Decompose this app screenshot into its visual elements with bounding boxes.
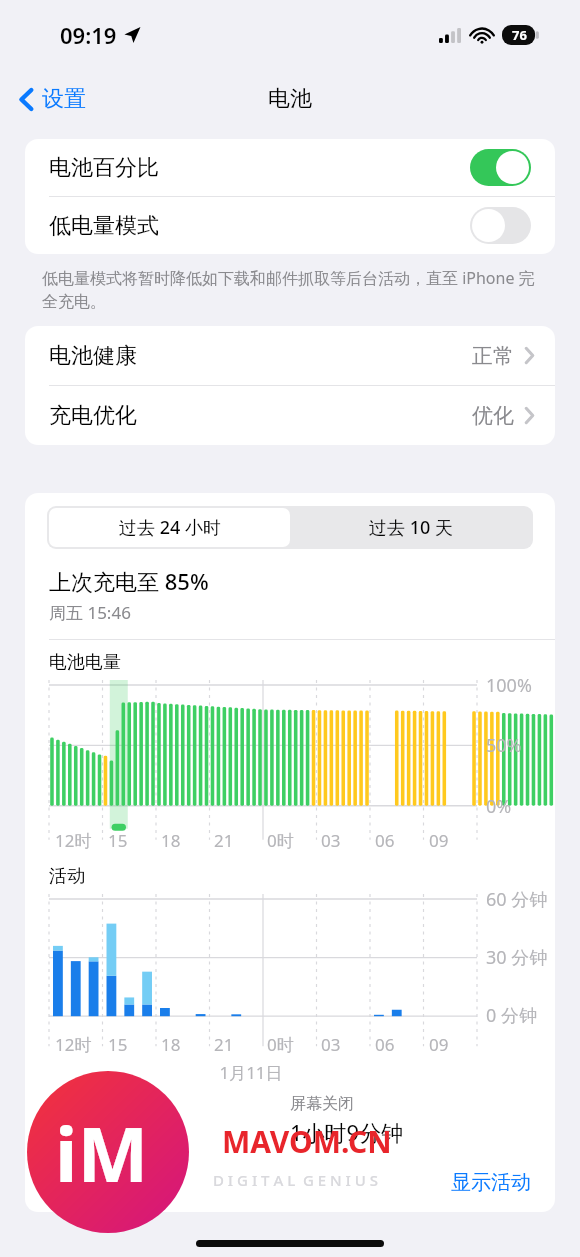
staticText: 1小时9分钟 xyxy=(290,1117,404,1147)
staticText: 30 分钟 xyxy=(486,945,548,970)
staticText: 低电量模式将暂时降低如下载和邮件抓取等后台活动，直至 iPhone 完全充电。 xyxy=(42,267,544,312)
staticText: 充电优化 xyxy=(49,402,137,430)
staticText: 正常 xyxy=(472,343,514,369)
staticText: 过去 10 天 xyxy=(369,515,453,540)
staticText: 过去 24 小时 xyxy=(119,515,221,540)
staticText: 09 xyxy=(429,829,449,852)
staticText: 0时 xyxy=(267,829,294,852)
staticText: 12时 xyxy=(55,1033,92,1056)
staticText: 18 xyxy=(161,829,181,852)
staticText: MAVOM.CN xyxy=(222,1121,392,1162)
staticText: 屏幕关闭 xyxy=(290,1094,354,1114)
staticText: 12时 xyxy=(55,829,92,852)
staticText: 09:19 xyxy=(60,20,117,50)
staticText: App 电池用量 xyxy=(49,1169,172,1196)
staticText: 21 xyxy=(214,829,234,852)
staticText: 03 xyxy=(321,829,341,852)
other: Watermark xyxy=(0,0,580,1257)
staticText: 15 xyxy=(108,1033,128,1056)
staticText: 上次充电至 85% xyxy=(49,566,209,596)
staticText: 屏幕开启 xyxy=(49,1094,113,1114)
staticText: iM xyxy=(55,1102,149,1204)
staticText: 21 xyxy=(214,1033,234,1056)
staticText: 周五 15:46 xyxy=(49,601,131,624)
staticText: 电池 xyxy=(268,85,312,113)
button[interactable]: 设置 xyxy=(12,78,93,120)
staticText: 18 xyxy=(161,1033,181,1056)
button[interactable]: 低电量模式 xyxy=(25,197,555,254)
staticText: 09 xyxy=(429,1033,449,1056)
staticText: 低电量模式 xyxy=(49,212,159,240)
staticText: 1月11日 xyxy=(25,1061,477,1084)
staticText: 06 xyxy=(375,829,395,852)
staticText: 电池百分比 xyxy=(49,154,159,182)
staticText: 50% xyxy=(486,733,522,758)
button[interactable]: 充电优化 xyxy=(25,386,555,445)
button[interactable]: 过去 24 小时 xyxy=(49,508,290,547)
staticText: 06 xyxy=(375,1033,395,1056)
staticText: 03 xyxy=(321,1033,341,1056)
button[interactable]: 过去 10 天 xyxy=(290,508,531,547)
staticText: 0% xyxy=(486,794,512,819)
staticText: 100% xyxy=(486,673,532,698)
button[interactable]: App 电池用量 xyxy=(25,1169,555,1196)
staticText: D I G I T A L G E N I U S xyxy=(213,1170,378,1190)
staticText: 76 xyxy=(512,26,527,44)
button[interactable]: 电池百分比 xyxy=(25,139,555,196)
staticText: 设置 xyxy=(42,85,86,113)
staticText: 60 分钟 xyxy=(486,887,548,912)
staticText: 15 xyxy=(108,829,128,852)
staticText: 活动 xyxy=(49,865,85,888)
staticText: 0 分钟 xyxy=(486,1003,537,1028)
staticText: 电池健康 xyxy=(49,342,137,370)
staticText: 0时 xyxy=(267,1033,294,1056)
staticText: 优化 xyxy=(472,403,514,429)
button[interactable]: 电池健康 xyxy=(25,326,555,385)
staticText: 显示活动 xyxy=(451,1170,531,1195)
staticText: 2小时6分钟 xyxy=(49,1117,163,1147)
staticText: 电池电量 xyxy=(49,651,121,674)
